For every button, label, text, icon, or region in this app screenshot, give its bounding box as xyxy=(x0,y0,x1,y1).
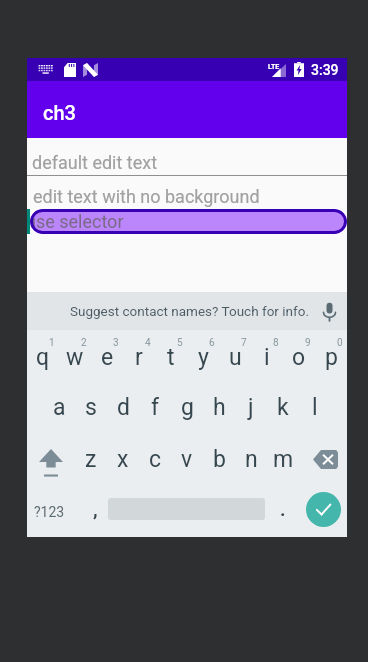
staticText: Suggest contact names? Touch for info. xyxy=(70,303,309,319)
staticText: g xyxy=(181,394,194,421)
staticText: b xyxy=(213,446,226,473)
button[interactable]: ?123 xyxy=(27,485,84,537)
staticText: r xyxy=(135,344,143,371)
button[interactable]: m xyxy=(267,433,299,485)
staticText: , xyxy=(93,498,98,520)
staticText: d xyxy=(117,394,130,421)
button[interactable]: f xyxy=(139,381,171,433)
staticText: y xyxy=(198,344,209,371)
staticText: LTE xyxy=(268,63,280,71)
staticText: use selector xyxy=(30,211,124,232)
button[interactable]: use selector xyxy=(30,209,347,234)
button[interactable]: x xyxy=(107,433,139,485)
button[interactable]: 4 xyxy=(123,330,155,381)
button[interactable]: l xyxy=(299,381,331,433)
staticText: 0 xyxy=(337,337,343,349)
staticText: j xyxy=(248,394,254,421)
staticText: 3 xyxy=(113,337,119,349)
staticText: c xyxy=(149,446,162,473)
button[interactable]: Enter xyxy=(299,485,347,537)
staticText: o xyxy=(292,344,306,371)
button[interactable]: 7 xyxy=(219,330,251,381)
button[interactable]: h xyxy=(203,381,235,433)
staticText: 4 xyxy=(145,337,151,349)
staticText: m xyxy=(273,446,294,473)
button[interactable]: Voice input xyxy=(317,300,341,324)
button[interactable]: n xyxy=(235,433,267,485)
staticText: default edit text xyxy=(32,152,158,173)
staticText: 2 xyxy=(81,337,87,349)
button[interactable]: 1 xyxy=(27,330,59,381)
staticText: l xyxy=(312,394,318,421)
button[interactable]: 2 xyxy=(59,330,91,381)
staticText: p xyxy=(325,344,338,371)
button[interactable]: a xyxy=(43,381,75,433)
button[interactable]: Space xyxy=(108,485,265,537)
staticText: u xyxy=(229,344,242,371)
button[interactable]: 9 xyxy=(283,330,315,381)
staticText: a xyxy=(53,394,66,421)
staticText: 6 xyxy=(209,337,215,349)
staticText: h xyxy=(213,394,226,421)
button[interactable]: g xyxy=(171,381,203,433)
staticText: ch3 xyxy=(43,101,76,124)
button[interactable]: Shift xyxy=(27,433,75,485)
staticText: 5 xyxy=(177,337,183,349)
staticText: 1 xyxy=(49,337,55,349)
button[interactable]: . xyxy=(267,485,299,537)
staticText: i xyxy=(264,344,270,371)
staticText: 8 xyxy=(273,337,279,349)
button[interactable]: s xyxy=(75,381,107,433)
button[interactable]: j xyxy=(235,381,267,433)
staticText: ?123 xyxy=(34,504,65,520)
staticText: edit text with no background xyxy=(33,186,260,207)
staticText: v xyxy=(181,446,193,473)
button[interactable]: c xyxy=(139,433,171,485)
button[interactable]: 3 xyxy=(91,330,123,381)
staticText: k xyxy=(277,394,289,421)
button[interactable]: 5 xyxy=(155,330,187,381)
button[interactable]: k xyxy=(267,381,299,433)
button[interactable]: z xyxy=(75,433,107,485)
button[interactable]: b xyxy=(203,433,235,485)
staticText: . xyxy=(280,498,286,520)
staticText: z xyxy=(85,446,97,473)
staticText: t xyxy=(167,344,175,371)
staticText: w xyxy=(66,344,84,371)
staticText: n xyxy=(245,446,258,473)
staticText: e xyxy=(101,344,114,371)
staticText: 7 xyxy=(241,337,247,349)
staticText: s xyxy=(85,394,97,421)
staticText: 3:39 xyxy=(311,62,339,78)
button[interactable]: v xyxy=(171,433,203,485)
button[interactable]: 6 xyxy=(187,330,219,381)
button[interactable]: d xyxy=(107,381,139,433)
button[interactable]: Backspace xyxy=(299,433,347,485)
staticText: x xyxy=(117,446,129,473)
staticText: f xyxy=(151,394,159,421)
staticText: 9 xyxy=(305,337,311,349)
staticText: q xyxy=(36,344,50,371)
button[interactable]: 8 xyxy=(251,330,283,381)
button[interactable]: , xyxy=(80,485,111,537)
button[interactable]: 0 xyxy=(315,330,347,381)
